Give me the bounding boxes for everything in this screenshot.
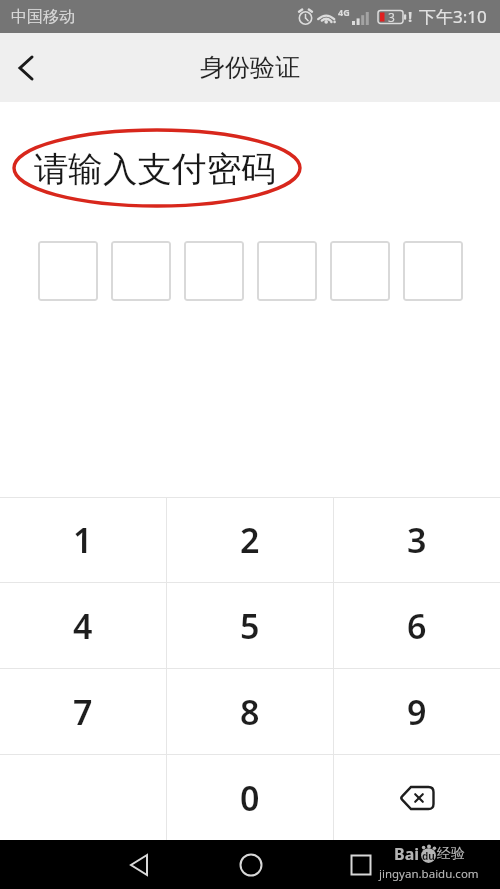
button[interactable]: 2: [167, 498, 333, 582]
staticText: 3: [407, 517, 427, 563]
staticText: 4: [73, 603, 93, 649]
button[interactable]: 0: [167, 755, 333, 840]
button[interactable]: 4: [0, 583, 166, 668]
button[interactable]: Back: [0, 42, 52, 94]
button[interactable]: 3: [334, 498, 500, 582]
button[interactable]: [38, 241, 98, 301]
button[interactable]: [184, 241, 244, 301]
button[interactable]: 7: [0, 669, 166, 754]
button[interactable]: Recents: [333, 840, 389, 889]
staticText: jingyan.baidu.com: [379, 866, 479, 882]
staticText: 2: [240, 517, 260, 563]
staticText: 3: [388, 9, 395, 25]
staticText: du: [422, 849, 435, 863]
staticText: 中国移动: [11, 7, 75, 27]
staticText: 7: [73, 689, 93, 735]
button[interactable]: [403, 241, 463, 301]
button[interactable]: [330, 241, 390, 301]
staticText: 8: [240, 689, 260, 735]
staticText: 4G: [338, 6, 350, 18]
staticText: 经验: [437, 845, 465, 863]
button[interactable]: 6: [334, 583, 500, 668]
button[interactable]: 1: [0, 498, 166, 582]
button[interactable]: Home: [223, 840, 279, 889]
staticText: 0: [240, 775, 260, 821]
button[interactable]: 8: [167, 669, 333, 754]
button[interactable]: 5: [167, 583, 333, 668]
staticText: 下午3:10: [419, 5, 487, 28]
button[interactable]: 9: [334, 669, 500, 754]
button[interactable]: [111, 241, 171, 301]
staticText: Bai: [394, 843, 420, 865]
button[interactable]: [257, 241, 317, 301]
staticText: !: [408, 6, 413, 26]
staticText: 9: [407, 689, 427, 735]
button[interactable]: Back: [112, 840, 168, 889]
staticText: 身份验证: [200, 52, 300, 83]
other: Backspace: [397, 783, 437, 813]
staticText: 请输入支付密码: [34, 148, 276, 191]
staticText: 5: [240, 603, 260, 649]
button[interactable]: Backspace: [334, 755, 500, 840]
staticText: 1: [73, 517, 93, 563]
staticText: 6: [407, 603, 427, 649]
